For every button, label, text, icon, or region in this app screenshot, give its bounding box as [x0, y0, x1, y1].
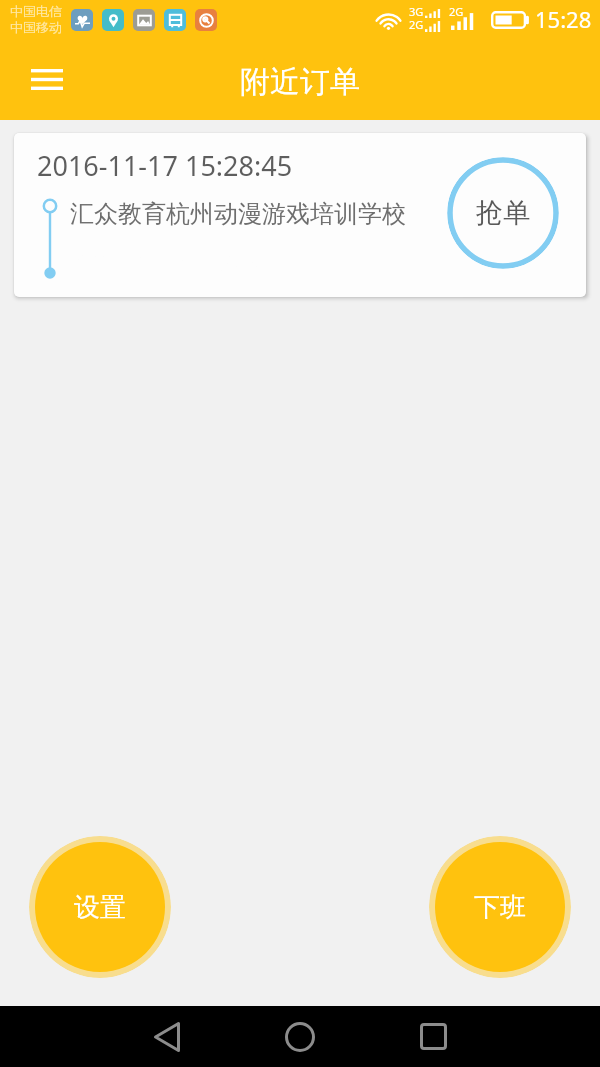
staticText: 下班 [474, 891, 526, 924]
staticText: 2G [449, 4, 464, 19]
button[interactable]: 下班 [429, 836, 571, 978]
staticText: 中国移动 [10, 19, 62, 35]
button[interactable]: Menu [18, 53, 75, 106]
staticText: 中国电信 [10, 3, 62, 19]
staticText: 附近订单 [240, 63, 360, 101]
staticText: 设置 [74, 891, 126, 924]
staticText: 汇众教育杭州动漫游戏培训学校 [70, 199, 406, 229]
staticText: 15:28 [535, 4, 592, 34]
staticText: 抢单 [476, 196, 530, 230]
staticText: 3G [409, 4, 424, 19]
staticText: 2016-11-17 15:28:45 [37, 147, 293, 184]
button[interactable]: Back [146, 1006, 188, 1067]
button[interactable]: 设置 [29, 836, 171, 978]
button[interactable]: Recents [413, 1006, 453, 1067]
button[interactable]: 2016-11-17 15:28:45 [14, 133, 586, 297]
button[interactable]: Home [280, 1006, 320, 1067]
staticText: 2G [409, 17, 424, 32]
button[interactable]: 抢单 [447, 157, 559, 269]
